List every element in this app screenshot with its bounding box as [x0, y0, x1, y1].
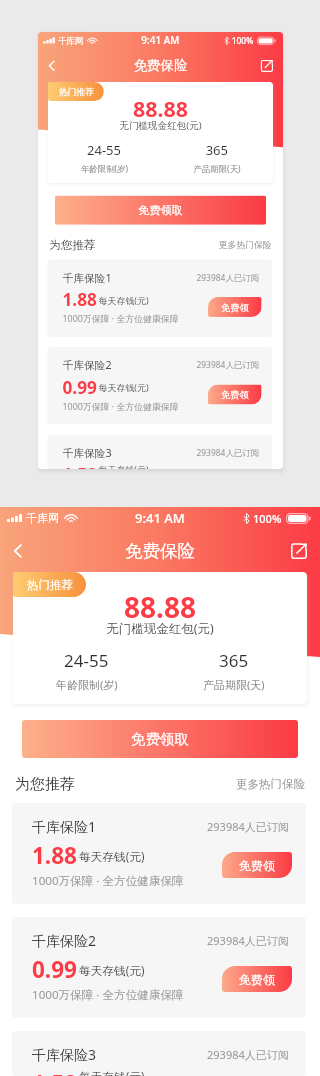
- staticText: 免费保险: [134, 57, 187, 74]
- staticText: 9:41 AM: [141, 33, 180, 47]
- staticText: 88.88: [48, 94, 273, 123]
- staticText: 1000万保障 · 全方位健康保障: [62, 313, 179, 325]
- button[interactable]: Back: [4, 537, 32, 565]
- staticText: 免费保险: [125, 540, 195, 562]
- staticText: 24-55: [87, 141, 121, 159]
- staticText: 免费领: [239, 972, 275, 987]
- staticText: 293984人已订阅: [196, 272, 259, 283]
- button[interactable]: 千库保险3: [12, 1031, 306, 1076]
- staticText: 产品期限(天): [193, 163, 241, 174]
- button[interactable]: 更多热门保险: [236, 777, 305, 791]
- staticText: 1000万保障 · 全方位健康保障: [32, 873, 184, 889]
- button[interactable]: 免费领取: [55, 196, 266, 225]
- button[interactable]: 千库保险1: [47, 259, 272, 337]
- staticText: 每天存钱(元): [79, 848, 145, 864]
- staticText: 1.58: [62, 463, 97, 469]
- button[interactable]: 免费领: [222, 852, 292, 878]
- staticText: 千库保险3: [62, 445, 112, 460]
- button[interactable]: 千库保险1: [12, 803, 306, 904]
- staticText: 1.58: [32, 1068, 77, 1076]
- staticText: 293984人已订阅: [207, 933, 289, 948]
- staticText: 每天存钱(元): [79, 962, 145, 978]
- staticText: 365: [219, 649, 249, 672]
- staticText: 100%: [253, 511, 282, 526]
- staticText: 免费领: [239, 858, 275, 873]
- staticText: 千库网: [26, 511, 59, 525]
- staticText: 每天存钱(元): [98, 294, 149, 306]
- button[interactable]: 千库保险2: [12, 917, 306, 1018]
- staticText: 年龄限制(岁): [81, 163, 128, 174]
- staticText: 免费领取: [138, 203, 183, 217]
- staticText: 千库保险1: [32, 817, 97, 836]
- staticText: 293984人已订阅: [196, 359, 259, 371]
- staticText: 更多热门保险: [236, 777, 305, 791]
- staticText: 产品期限(天): [203, 677, 265, 692]
- staticText: 1.88: [62, 288, 97, 311]
- staticText: 365: [206, 141, 229, 159]
- button[interactable]: 免费领: [208, 297, 262, 317]
- staticText: 年龄限制(岁): [56, 677, 118, 692]
- staticText: 293984人已订阅: [196, 447, 259, 458]
- button[interactable]: Share: [256, 55, 278, 76]
- staticText: 免费领: [221, 302, 249, 313]
- staticText: 无门槛现金红包(元): [13, 620, 307, 637]
- staticText: 千库保险2: [62, 358, 112, 372]
- staticText: 1.88: [32, 840, 77, 871]
- button[interactable]: 千库保险3: [47, 434, 272, 469]
- staticText: 为您推荐: [15, 775, 75, 794]
- staticText: 293984人已订阅: [207, 819, 289, 834]
- staticText: 每天存钱(元): [98, 463, 149, 469]
- button[interactable]: 免费领: [208, 384, 262, 404]
- staticText: 为您推荐: [49, 238, 95, 252]
- button[interactable]: Share: [285, 537, 313, 565]
- staticText: 88.88: [13, 588, 307, 626]
- staticText: 热门推荐: [27, 578, 73, 592]
- staticText: 1000万保障 · 全方位健康保障: [32, 987, 184, 1003]
- staticText: 千库保险2: [32, 931, 97, 950]
- staticText: 每天存钱(元): [79, 1068, 145, 1076]
- button[interactable]: 免费领取: [22, 720, 298, 758]
- button[interactable]: 千库保险2: [47, 347, 272, 424]
- staticText: 千库网: [58, 35, 83, 46]
- staticText: 免费领: [221, 389, 249, 401]
- button[interactable]: 更多热门保险: [219, 239, 271, 250]
- staticText: 100%: [232, 35, 254, 47]
- staticText: 1000万保障 · 全方位健康保障: [62, 401, 179, 413]
- staticText: 千库保险1: [62, 270, 112, 285]
- staticText: 千库保险3: [32, 1045, 97, 1064]
- staticText: 每天存钱(元): [98, 381, 149, 394]
- staticText: 更多热门保险: [219, 239, 271, 250]
- button[interactable]: 免费领: [222, 966, 292, 992]
- staticText: 0.99: [32, 954, 77, 985]
- staticText: 9:41 AM: [135, 509, 185, 527]
- staticText: 24-55: [64, 649, 109, 672]
- staticText: 293984人已订阅: [207, 1047, 289, 1062]
- staticText: 热门推荐: [59, 86, 94, 97]
- button[interactable]: Back: [41, 55, 62, 76]
- staticText: 0.99: [62, 375, 97, 399]
- staticText: 免费领取: [131, 730, 189, 748]
- staticText: 无门槛现金红包(元): [48, 119, 273, 132]
